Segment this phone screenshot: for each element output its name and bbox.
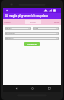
staticText: dolor xyxy=(54,21,60,24)
button[interactable]: Home xyxy=(28,85,36,92)
staticText: type xyxy=(34,27,39,30)
staticText: postcode xyxy=(6,32,15,35)
button[interactable]: Recents xyxy=(45,85,53,92)
staticText: LG maglia pilgrumen blt coupelaca xyxy=(5,14,49,18)
staticText: Select xyxy=(6,27,12,30)
button[interactable]: postcode xyxy=(5,32,59,35)
button[interactable]: Select xyxy=(5,27,31,30)
staticText: Lorem xyxy=(4,21,11,24)
button[interactable]: address xyxy=(5,37,59,40)
staticText: address xyxy=(6,37,14,40)
staticText: ipsum xyxy=(30,21,36,24)
button[interactable]: Continue xyxy=(24,42,40,46)
button[interactable]: type xyxy=(33,27,59,30)
staticText: Continue xyxy=(27,43,37,46)
button[interactable]: Banner xyxy=(3,19,61,25)
button[interactable]: Back xyxy=(12,85,20,92)
